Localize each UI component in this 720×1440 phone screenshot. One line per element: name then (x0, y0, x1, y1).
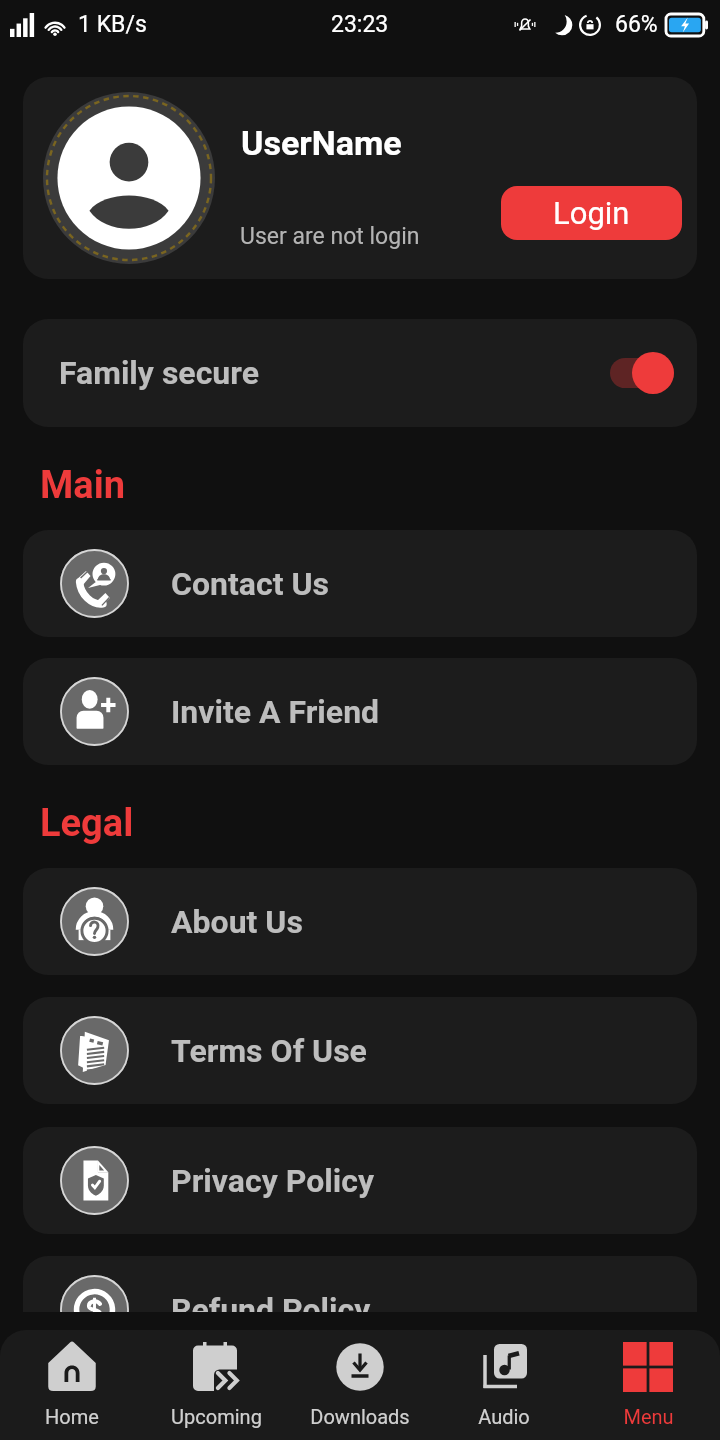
button[interactable]: Profile picture (43, 92, 215, 264)
button[interactable]: About Us (23, 868, 697, 975)
staticText: Audio (478, 1405, 530, 1428)
staticText: 66% (615, 11, 658, 38)
staticText: Invite A Friend (171, 693, 380, 731)
staticText: Home (45, 1405, 99, 1428)
button[interactable]: Home (0, 1337, 144, 1433)
button[interactable]: Refund Policy (23, 1256, 697, 1312)
button[interactable]: Downloads (288, 1337, 432, 1433)
staticText: Upcoming (171, 1405, 262, 1428)
staticText: About Us (171, 903, 303, 941)
staticText: 23:23 (331, 11, 389, 38)
button[interactable]: Contact Us (23, 530, 697, 637)
staticText: Privacy Policy (171, 1162, 374, 1200)
staticText: Family secure (59, 354, 259, 392)
button[interactable]: Terms Of Use (23, 997, 697, 1104)
staticText: Main (40, 463, 720, 508)
staticText: Login (553, 195, 630, 231)
staticText: 1 KB/s (78, 11, 147, 38)
staticText: User are not login (240, 223, 420, 250)
button[interactable]: Upcoming (144, 1337, 288, 1433)
staticText: Contact Us (171, 565, 329, 603)
staticText: Legal (40, 801, 720, 846)
button[interactable]: Family secure (23, 319, 697, 427)
staticText: Terms Of Use (171, 1032, 367, 1070)
button[interactable]: Menu (576, 1337, 720, 1433)
staticText: Downloads (310, 1405, 410, 1428)
button[interactable]: Invite A Friend (23, 658, 697, 765)
button[interactable]: Login (501, 186, 682, 240)
staticText: UserName (241, 123, 402, 163)
staticText: Refund Policy (171, 1291, 371, 1312)
button[interactable]: Audio (432, 1337, 576, 1433)
button[interactable]: Toggle Family secure (610, 352, 674, 394)
staticText: Menu (623, 1405, 674, 1428)
button[interactable]: Privacy Policy (23, 1127, 697, 1234)
